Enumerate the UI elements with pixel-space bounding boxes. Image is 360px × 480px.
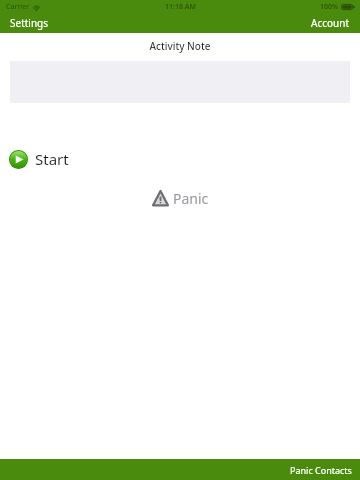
button[interactable]: Account (301, 13, 360, 33)
staticText: Start (35, 149, 69, 169)
button[interactable]: Panic Contacts (282, 459, 360, 480)
button[interactable]: Start activity (9, 149, 69, 169)
staticText: Activity Note (0, 39, 360, 53)
staticText: 11:18 AM (165, 2, 196, 12)
staticText: Settings (10, 16, 49, 30)
staticText: Panic (173, 189, 209, 208)
staticText: Account (311, 16, 350, 30)
staticText: Carrier (6, 2, 30, 12)
button[interactable]: Panic (152, 189, 209, 208)
button[interactable]: Settings (0, 13, 59, 33)
other: Panic (152, 190, 169, 207)
other: Start activity (9, 150, 28, 169)
staticText: 100% (320, 2, 339, 12)
staticText: Panic Contacts (290, 464, 352, 476)
